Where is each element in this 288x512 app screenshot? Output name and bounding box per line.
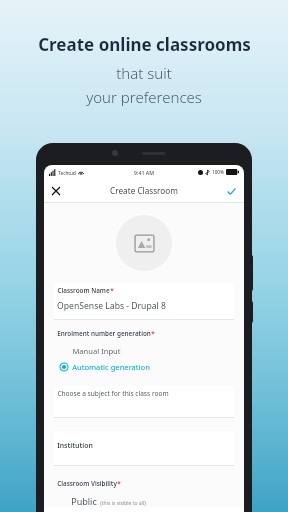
button[interactable]: Add classroom image [116,215,172,271]
staticText: Public [71,495,97,507]
staticText: 100% [212,169,224,175]
staticText: Classroom Name [57,286,110,295]
button[interactable]: Manual Input [57,344,231,357]
staticText: Classroom Visibility [57,479,117,488]
staticText: Create Classroom [110,185,178,196]
staticText: * [117,479,121,488]
staticText: Institution [57,441,93,450]
staticText: your preferences [86,87,202,107]
button[interactable]: Public [71,495,231,507]
staticText: 9:41 AM [134,169,154,176]
staticText: Techtud [58,170,76,176]
staticText: Create online classrooms [38,33,251,56]
button[interactable]: Choose a subject for this class room [54,386,234,418]
button[interactable]: Automatic generation [57,360,231,373]
staticText: (this is visible to all) [100,500,146,507]
button[interactable]: Close [46,181,66,201]
button[interactable]: Save classroom [221,181,241,201]
staticText: * [110,286,114,295]
button[interactable]: Classroom Name [54,283,234,320]
staticText: Manual Input [72,346,121,356]
staticText: Choose a subject for this class room [57,389,169,398]
staticText: Automatic generation [72,362,150,372]
staticText: OpenSense Labs - Drupal 8 [57,300,166,312]
staticText: Enrolment number generation [57,329,151,338]
button[interactable]: Institution [54,431,234,466]
staticText: that suit [116,63,172,83]
staticText: * [151,329,155,338]
